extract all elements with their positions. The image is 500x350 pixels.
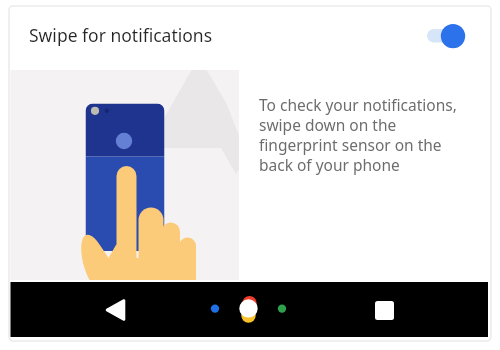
button[interactable]: Recent apps — [366, 293, 401, 328]
staticText: Swipe for notifications — [29, 23, 427, 47]
staticText: To check your notifications, swipe down … — [259, 94, 457, 175]
button[interactable]: Home — [205, 290, 293, 330]
button[interactable]: Back — [99, 292, 135, 328]
button[interactable]: Swipe for notifications toggle — [427, 19, 474, 50]
